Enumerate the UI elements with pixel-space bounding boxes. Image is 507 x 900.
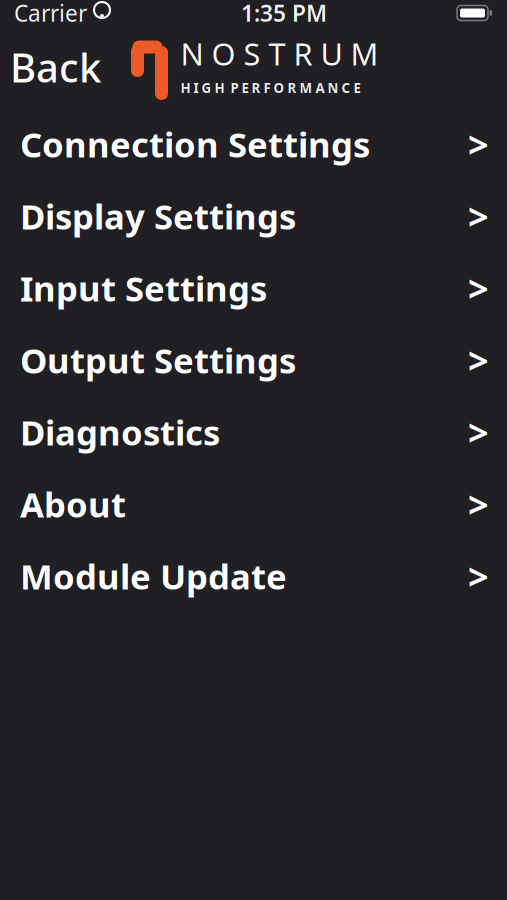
- button[interactable]: Diagnostics: [0, 396, 507, 468]
- button[interactable]: Display Settings: [0, 180, 507, 252]
- staticText: Back: [10, 40, 101, 93]
- staticText: Connection Settings: [20, 121, 370, 167]
- staticText: About: [20, 481, 126, 527]
- button[interactable]: About: [0, 468, 507, 540]
- button[interactable]: Back: [0, 30, 113, 103]
- staticText: 1:35 PM: [241, 0, 327, 28]
- staticText: Diagnostics: [20, 409, 220, 455]
- staticText: Module Update: [20, 553, 287, 599]
- staticText: H I G H P E R F O R M A N C E: [180, 79, 360, 97]
- staticText: Carrier: [14, 0, 87, 28]
- staticText: >: [468, 408, 489, 456]
- staticText: >: [468, 192, 489, 240]
- button[interactable]: Connection Settings: [0, 108, 507, 180]
- staticText: >: [468, 264, 489, 312]
- staticText: >: [468, 480, 489, 528]
- staticText: N O S T R U M: [180, 33, 378, 74]
- button[interactable]: Module Update: [0, 540, 507, 612]
- staticText: Output Settings: [20, 337, 296, 383]
- staticText: >: [468, 336, 489, 384]
- button[interactable]: Input Settings: [0, 252, 507, 324]
- staticText: >: [468, 552, 489, 600]
- staticText: >: [468, 120, 489, 168]
- staticText: Input Settings: [20, 265, 267, 311]
- staticText: Display Settings: [20, 193, 296, 239]
- button[interactable]: Output Settings: [0, 324, 507, 396]
